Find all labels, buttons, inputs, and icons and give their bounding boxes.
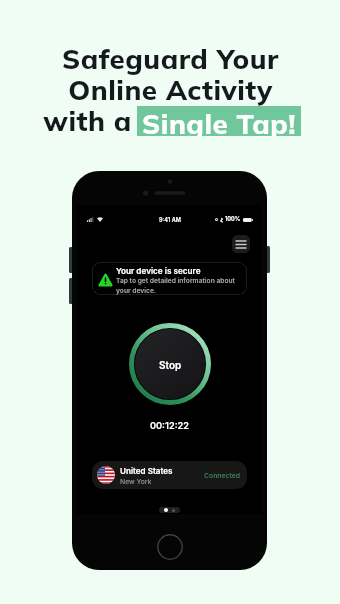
staticText: Tap to get detailed information about yo… bbox=[116, 277, 235, 295]
button[interactable]: Stop bbox=[129, 323, 211, 405]
staticText: Stop bbox=[159, 359, 182, 371]
button[interactable]: United States bbox=[92, 461, 247, 489]
staticText: 9:41 AM bbox=[159, 217, 181, 224]
staticText: Online Activity bbox=[68, 72, 273, 107]
staticText: Single Tap! bbox=[142, 106, 296, 136]
staticText: 100% bbox=[225, 216, 241, 223]
staticText: 00:12:22 bbox=[77, 420, 262, 431]
staticText: Your device is secure bbox=[116, 266, 201, 276]
staticText: Connected bbox=[204, 471, 241, 479]
staticText: with a bbox=[43, 103, 132, 138]
button[interactable]: Menu bbox=[232, 235, 250, 253]
staticText: Safeguard Your bbox=[62, 41, 279, 76]
staticText: New York bbox=[120, 477, 152, 485]
button[interactable]: Your device is secure bbox=[92, 262, 247, 295]
staticText: United States bbox=[120, 466, 173, 476]
